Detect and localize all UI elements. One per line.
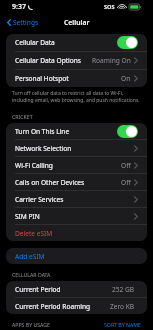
staticText: 9:37 [12, 2, 26, 12]
button[interactable]: Toggle [117, 36, 138, 49]
button[interactable]: Settings [5, 16, 41, 29]
button[interactable]: Delete eSIM [6, 225, 147, 241]
button[interactable]: Network Selection [6, 140, 147, 156]
staticText: Roaming On [92, 56, 131, 65]
staticText: Carrier Services [15, 195, 64, 204]
button[interactable]: Current Period [6, 281, 147, 297]
button[interactable]: SORT BY NAME [104, 321, 141, 327]
staticText: Settings [13, 18, 39, 27]
staticText: Current Period [15, 285, 61, 294]
staticText: Network Selection [15, 144, 72, 153]
staticText: 252 GB [112, 285, 135, 294]
button[interactable]: SIM PIN [6, 208, 147, 224]
staticText: Wi-Fi Calling [15, 161, 53, 170]
staticText: Off [121, 161, 131, 170]
button[interactable]: Cellular Data [6, 34, 147, 51]
button[interactable]: Toggle [117, 125, 138, 138]
staticText: Add eSIM [15, 252, 45, 261]
button[interactable]: Carrier Services [6, 191, 147, 207]
button[interactable]: Personal Hotspot [6, 70, 147, 87]
button[interactable]: Current Period Roaming [6, 298, 147, 314]
staticText: SIM PIN [15, 212, 40, 221]
staticText: CELLULAR DATA [12, 271, 51, 278]
staticText: CRICKET [12, 113, 33, 120]
staticText: Turn off cellular data to restrict all d… [12, 90, 141, 103]
staticText: Turn On This Line [15, 127, 70, 136]
staticText: Personal Hotspot [15, 74, 69, 83]
staticText: Off [121, 178, 131, 187]
button[interactable]: Turn On This Line [6, 123, 147, 139]
staticText: APPS BY USAGE [12, 321, 50, 327]
staticText: Zero KB [110, 302, 135, 311]
button[interactable]: Calls on Other Devices [6, 174, 147, 190]
button[interactable]: Cellular Data Options [6, 52, 147, 69]
staticText: Cellular [64, 18, 90, 27]
staticText: Cellular Data Options [15, 56, 82, 65]
staticText: Cellular Data [15, 38, 55, 47]
staticText: Current Period Roaming [15, 302, 91, 311]
staticText: SOS [104, 3, 115, 11]
staticText: Delete eSIM [15, 229, 53, 238]
staticText: Calls on Other Devices [15, 178, 85, 187]
staticText: SORT BY NAME [104, 321, 141, 327]
button[interactable]: Add eSIM [6, 248, 147, 264]
button[interactable]: Wi-Fi Calling [6, 157, 147, 173]
staticText: On [121, 74, 131, 83]
